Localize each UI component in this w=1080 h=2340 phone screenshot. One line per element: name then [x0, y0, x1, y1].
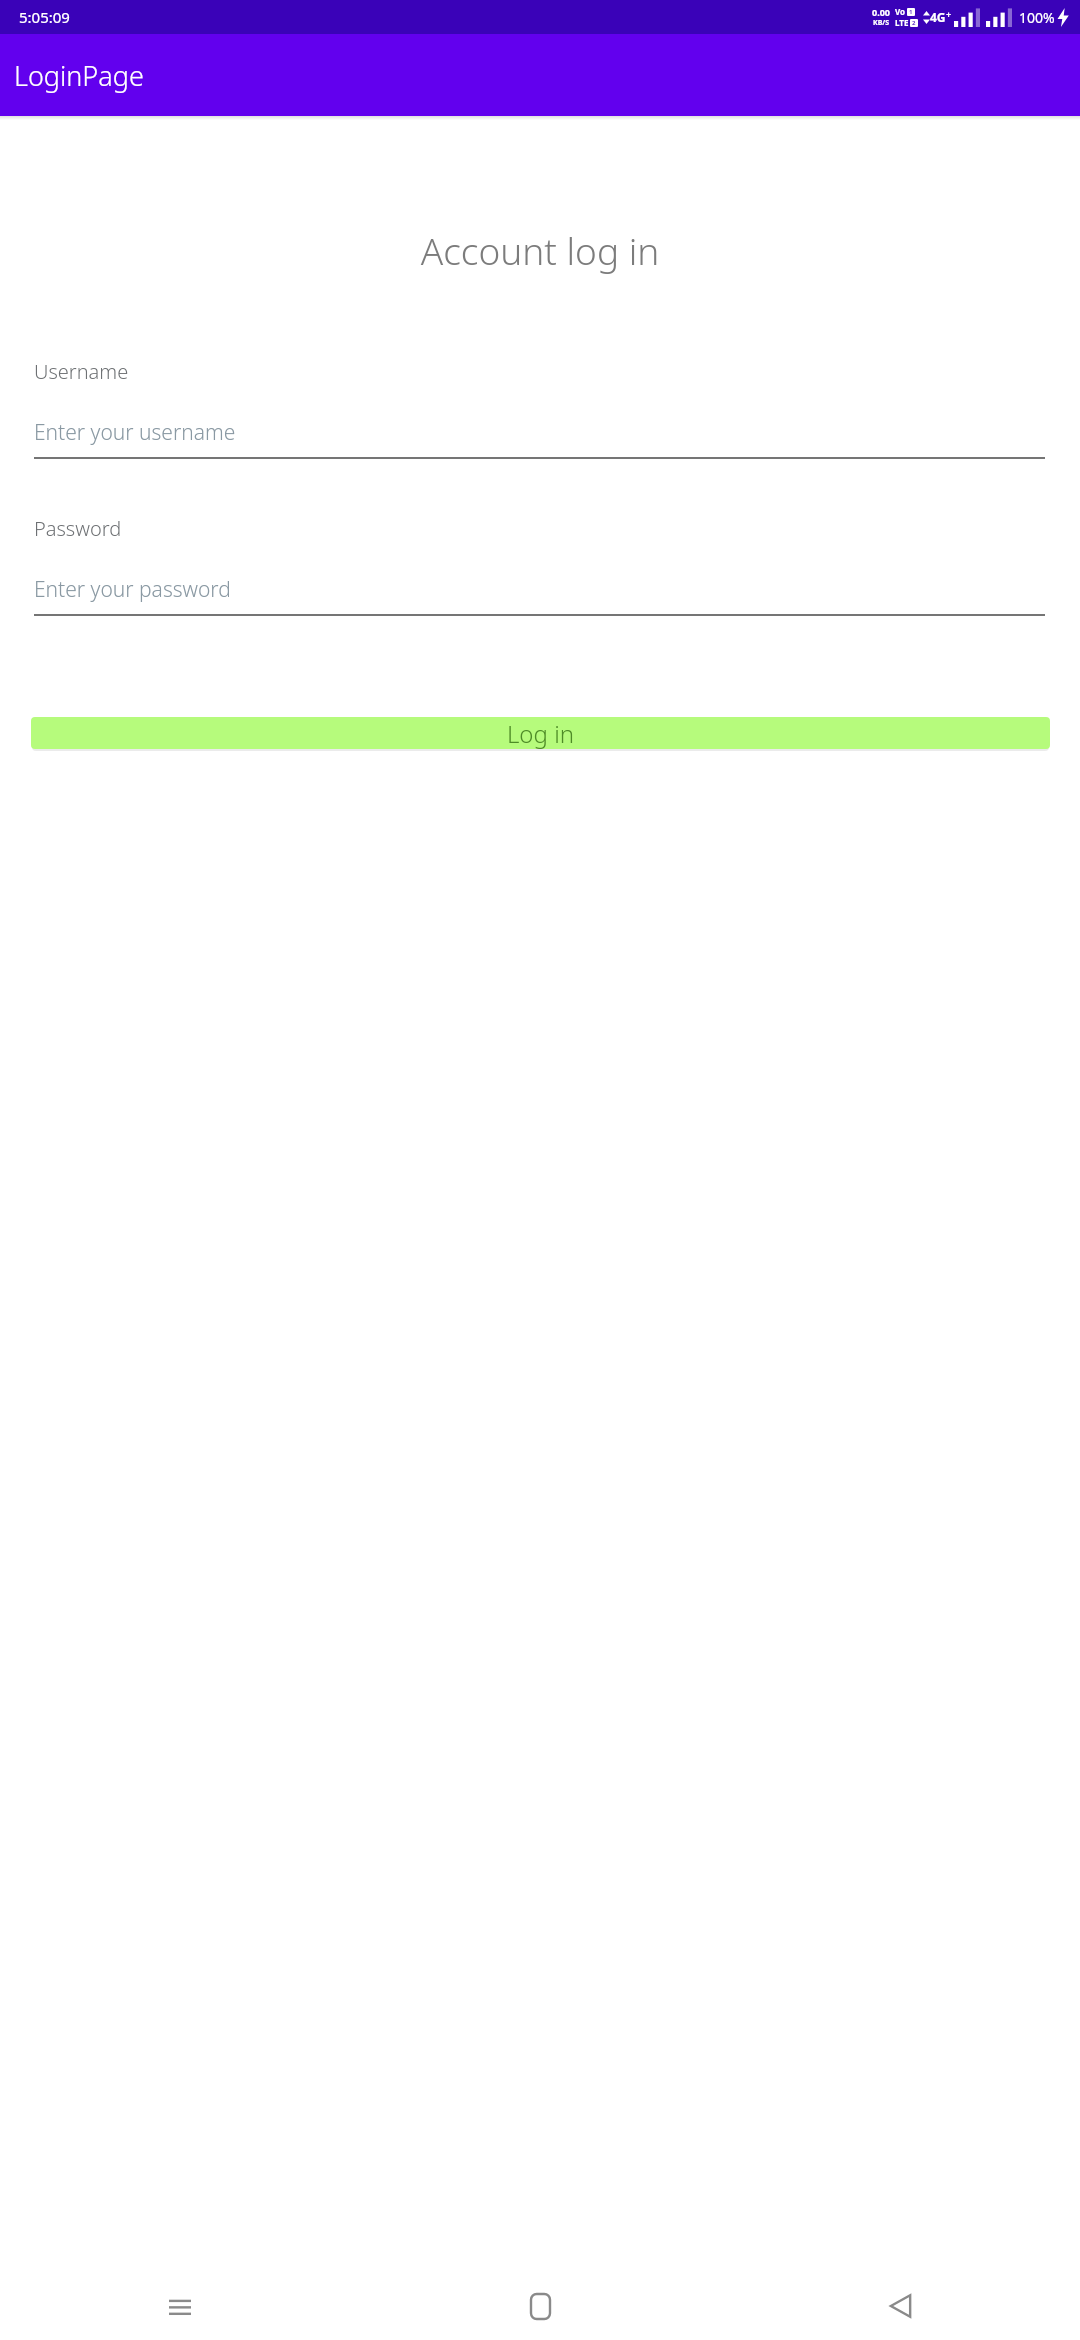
- staticText: Log in: [507, 717, 574, 749]
- staticText: LoginPage: [14, 57, 144, 94]
- staticText: 5:05:09: [19, 7, 70, 27]
- staticText: Password: [34, 515, 122, 542]
- staticText: Enter your password: [34, 575, 231, 604]
- staticText: LTE: [895, 17, 909, 28]
- button[interactable]: Enter your password: [34, 575, 1045, 616]
- button[interactable]: Back: [720, 2272, 1080, 2340]
- staticText: KB/S: [873, 18, 890, 28]
- staticText: Username: [34, 358, 129, 385]
- button[interactable]: Enter your username: [34, 418, 1045, 459]
- staticText: Account log in: [0, 225, 1080, 275]
- staticText: Enter your username: [34, 418, 236, 447]
- staticText: 4G: [930, 9, 946, 25]
- staticText: +: [946, 8, 952, 20]
- staticText: Vo: [895, 6, 906, 17]
- button[interactable]: Log in: [31, 717, 1050, 749]
- button[interactable]: Home: [360, 2272, 720, 2340]
- button[interactable]: Recent apps: [0, 2272, 360, 2340]
- staticText: 1: [909, 8, 913, 16]
- staticText: 2: [912, 19, 916, 27]
- staticText: 0.00: [872, 6, 890, 18]
- staticText: 100%: [1019, 8, 1055, 27]
